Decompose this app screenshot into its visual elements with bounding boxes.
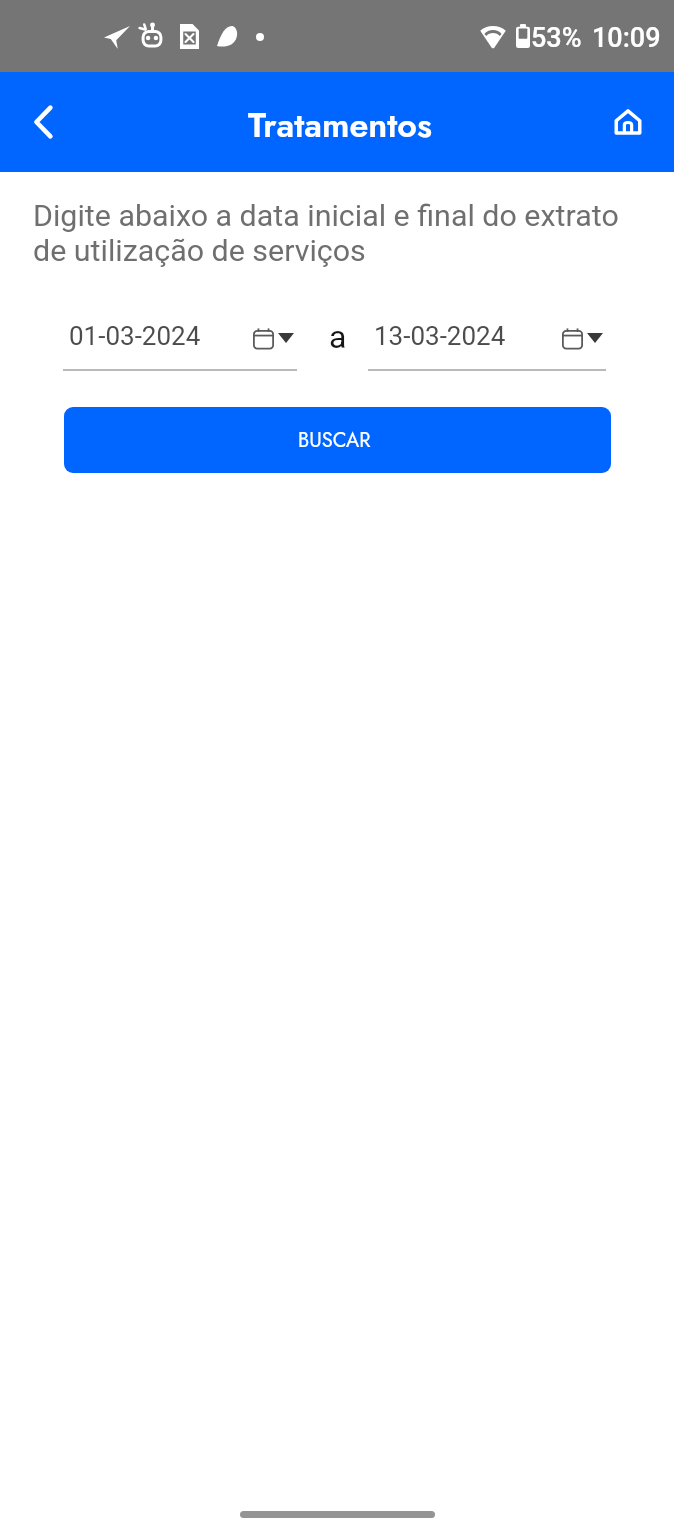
button[interactable]: BUSCAR — [64, 407, 611, 473]
staticText: 10:09 — [592, 22, 661, 54]
button[interactable]: Home — [600, 94, 656, 150]
staticText: Digite abaixo a data inicial e final do … — [33, 198, 643, 268]
staticText: 53% — [531, 22, 582, 54]
staticText: BUSCAR — [298, 426, 371, 455]
staticText: 01-03-2024 — [69, 321, 201, 351]
button[interactable]: Back — [16, 94, 72, 150]
staticText: a — [329, 318, 347, 356]
button[interactable]: 01-03-2024 — [63, 310, 297, 372]
button[interactable]: 13-03-2024 — [368, 310, 606, 372]
staticText: 13-03-2024 — [374, 321, 506, 351]
staticText: Tratamentos — [248, 101, 432, 150]
